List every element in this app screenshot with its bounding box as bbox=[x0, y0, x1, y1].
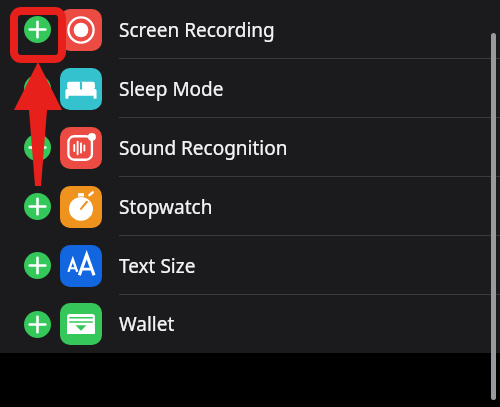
button[interactable]: Add control bbox=[0, 118, 500, 177]
button[interactable]: Add control bbox=[0, 295, 500, 353]
staticText: Screen Recording bbox=[119, 17, 275, 43]
staticText: Text Size bbox=[119, 253, 196, 279]
staticText: Stopwatch bbox=[119, 194, 213, 220]
staticText: Sound Recognition bbox=[119, 135, 288, 161]
button[interactable]: Add control bbox=[24, 16, 51, 43]
button[interactable]: Add control bbox=[0, 0, 500, 59]
staticText: Sleep Mode bbox=[119, 76, 224, 102]
button[interactable]: Add control bbox=[0, 177, 500, 236]
staticText: Wallet bbox=[119, 311, 175, 337]
button[interactable]: Add control bbox=[24, 75, 51, 102]
button[interactable]: Add control bbox=[24, 252, 51, 279]
button[interactable]: Add control bbox=[24, 311, 51, 338]
button[interactable]: Add control bbox=[24, 193, 51, 220]
button[interactable]: Add control bbox=[0, 59, 500, 118]
button[interactable]: Add control bbox=[24, 134, 51, 161]
button[interactable]: Add control bbox=[0, 236, 500, 295]
